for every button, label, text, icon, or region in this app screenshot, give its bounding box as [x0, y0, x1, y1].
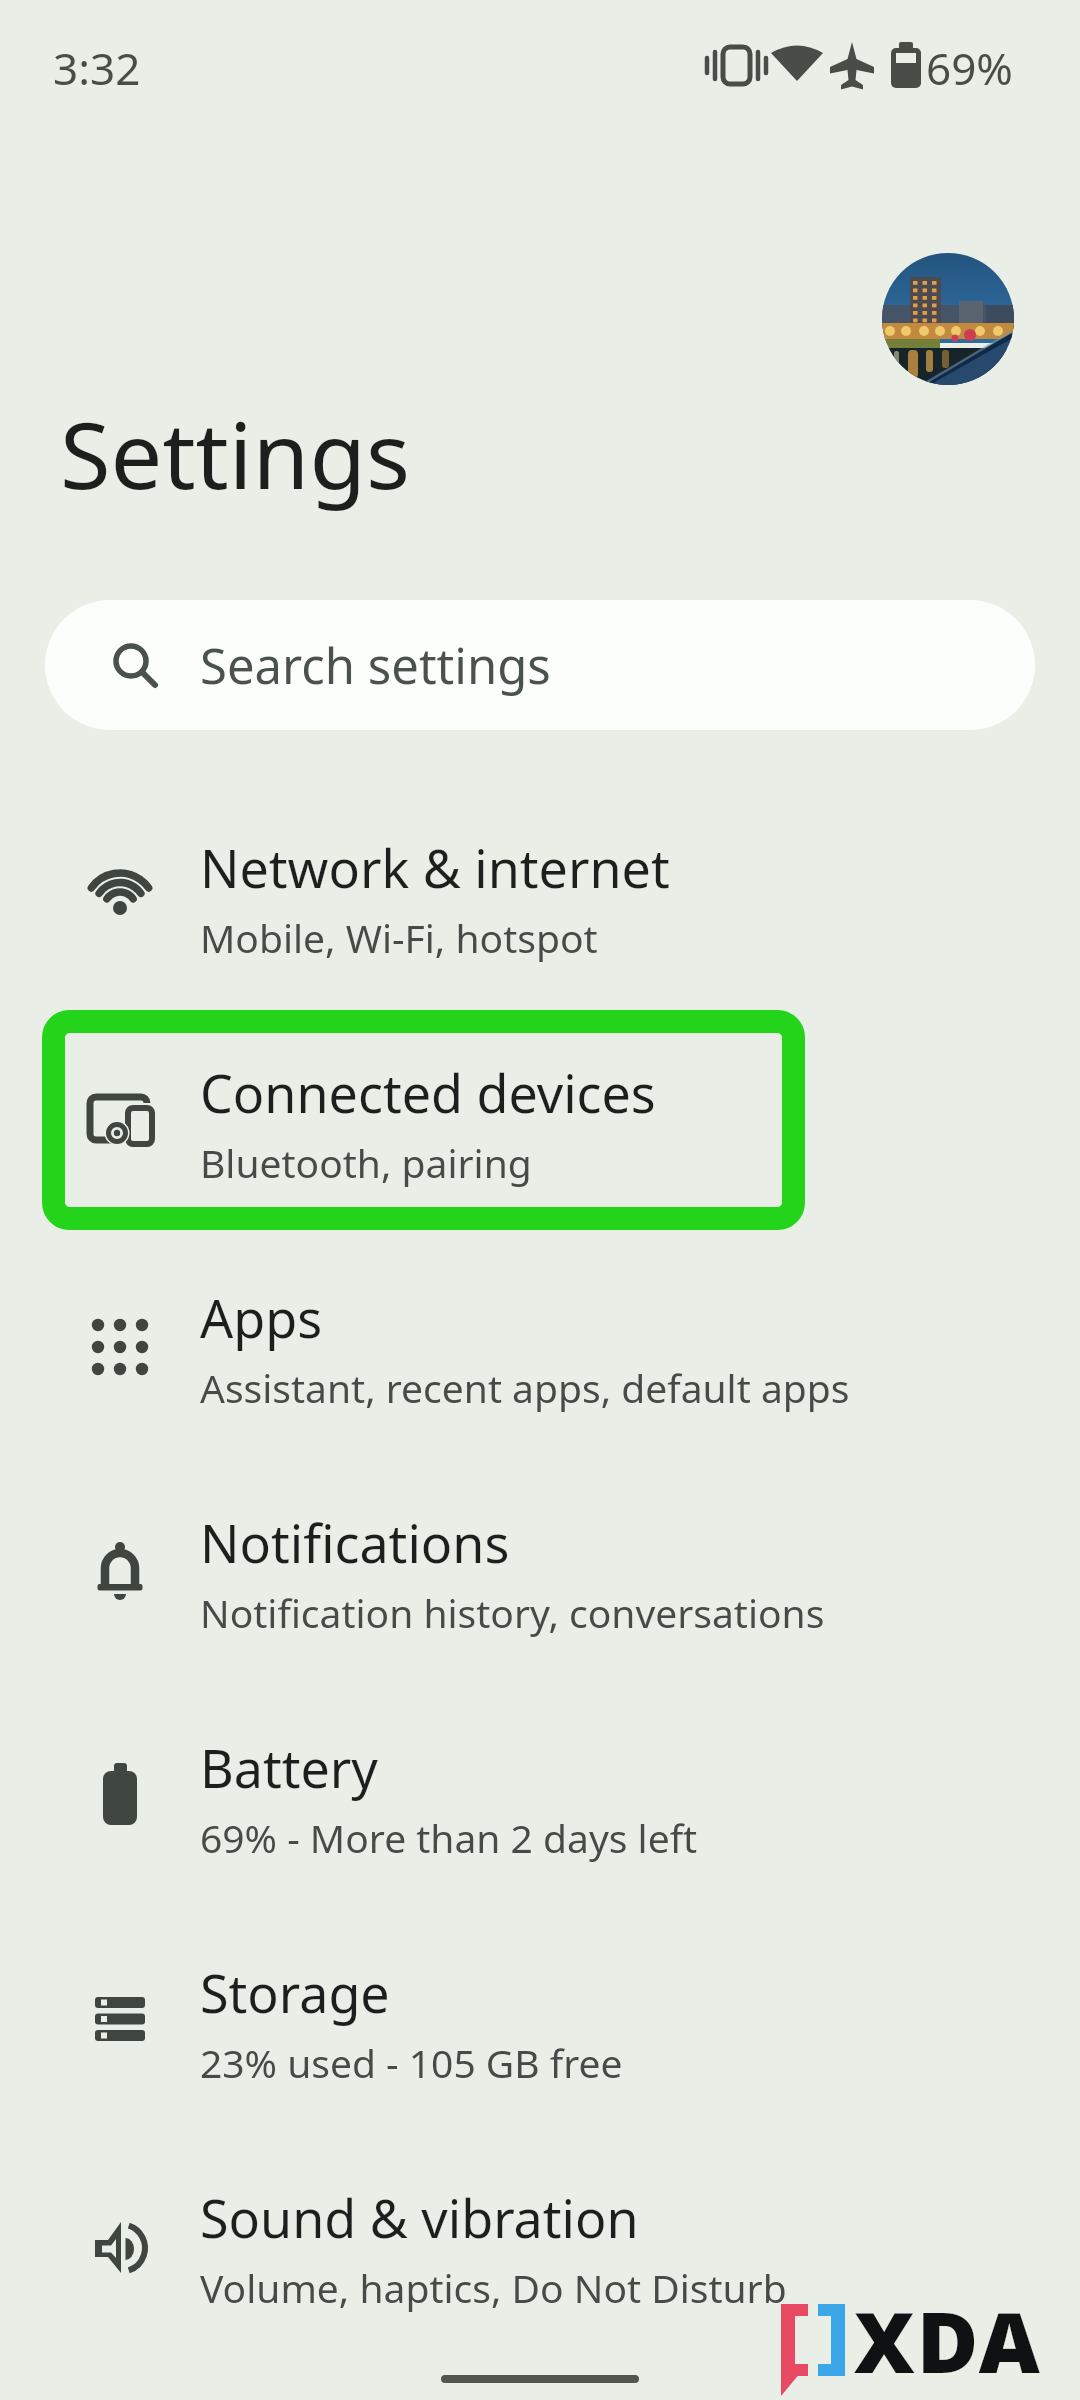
staticText: Search settings: [200, 632, 551, 699]
button[interactable]: [882, 253, 1014, 385]
staticText: Apps: [200, 1282, 323, 1353]
staticText: Mobile, Wi-Fi, hotspot: [200, 911, 598, 964]
staticText: Notification history, conversations: [200, 1586, 825, 1639]
staticText: Bluetooth, pairing: [200, 1136, 532, 1189]
button[interactable]: Apps: [0, 1235, 1080, 1460]
staticText: Battery: [200, 1732, 378, 1803]
button[interactable]: Notifications: [0, 1460, 1080, 1685]
staticText: Settings: [60, 391, 411, 516]
staticText: XDA: [854, 2283, 1042, 2397]
staticText: Storage: [200, 1957, 390, 2028]
staticText: Volume, haptics, Do Not Disturb: [200, 2261, 787, 2314]
button[interactable]: Search settings: [45, 600, 1035, 730]
staticText: Assistant, recent apps, default apps: [200, 1361, 850, 1414]
button[interactable]: Sound & vibration: [0, 2135, 1080, 2360]
staticText: 69%: [926, 38, 1013, 98]
staticText: Sound & vibration: [200, 2182, 639, 2253]
button[interactable]: Storage: [0, 1910, 1080, 2135]
staticText: 23% used - 105 GB free: [200, 2036, 623, 2089]
button[interactable]: Connected devices: [0, 1010, 1080, 1235]
staticText: 69% - More than 2 days left: [200, 1811, 698, 1864]
staticText: Connected devices: [200, 1057, 656, 1128]
button[interactable]: Battery: [0, 1685, 1080, 1910]
button[interactable]: Network & internet: [0, 785, 1080, 1010]
staticText: Notifications: [200, 1507, 510, 1578]
staticText: Network & internet: [200, 832, 670, 903]
staticText: 3:32: [53, 38, 141, 98]
